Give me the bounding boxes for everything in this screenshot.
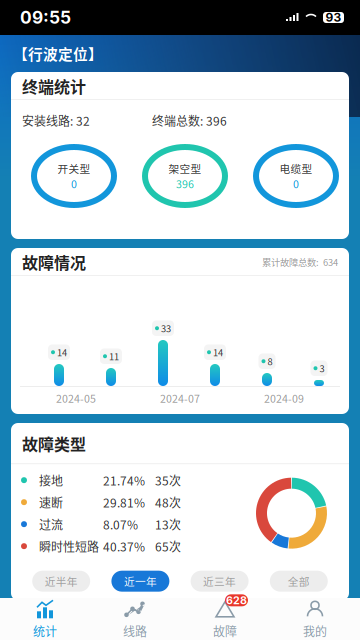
staticText: 8.07% [103,515,138,533]
button[interactable]: 统计 [0,598,90,640]
staticText: 近三年 [203,573,236,589]
staticText: 2024-09 [264,390,304,406]
staticText: 架空型 [168,161,201,176]
staticText: 0 [71,176,77,191]
staticText: 故障情况 [22,250,86,274]
staticText: 396 [176,176,194,191]
staticText: 【行波定位】 [13,43,103,64]
button[interactable]: 628 [180,598,270,640]
staticText: 33 [161,321,171,335]
staticText: 接地 [39,471,63,489]
staticText: 线路 [123,622,147,640]
staticText: 开关型 [57,161,90,176]
staticText: 628 [226,594,247,607]
staticText: 瞬时性短路 [39,537,99,555]
staticText: 过流 [39,515,63,533]
staticText: 近一年 [124,573,157,589]
staticText: 终端统计 [22,74,86,98]
staticText: 65次 [155,537,181,555]
staticText: 14 [213,345,223,359]
staticText: 故障类型 [22,432,86,455]
staticText: 93 [325,10,341,25]
button[interactable]: 近半年 [32,571,90,592]
staticText: 累计故障总数: 634 [262,255,338,269]
button[interactable]: 近三年 [191,571,249,592]
button[interactable]: 我的 [270,598,360,640]
staticText: 安装线路: 32 [22,112,90,129]
button[interactable]: 线路 [90,598,180,640]
staticText: 3 [319,361,324,375]
staticText: 2024-07 [160,390,200,406]
staticText: 2024-05 [56,390,96,406]
staticText: 终端总数: 396 [152,112,227,129]
staticText: 11 [109,349,119,363]
button[interactable]: 全部 [270,571,328,592]
staticText: 13次 [155,515,181,533]
staticText: 14 [57,345,67,359]
staticText: 21.74% [103,471,145,489]
staticText: 0 [293,176,299,191]
staticText: 35次 [155,471,181,489]
staticText: 48次 [155,493,181,511]
staticText: 09:55 [20,7,71,28]
staticText: 近半年 [45,573,78,589]
staticText: 统计 [33,622,57,640]
staticText: 我的 [303,622,327,640]
staticText: 电缆型 [279,161,312,176]
button[interactable]: 近一年 [111,571,169,592]
staticText: 故障 [213,622,237,640]
staticText: 8 [267,354,272,368]
staticText: 29.81% [103,493,145,511]
staticText: 全部 [288,573,310,589]
staticText: 40.37% [103,537,145,555]
staticText: 速断 [39,493,63,511]
